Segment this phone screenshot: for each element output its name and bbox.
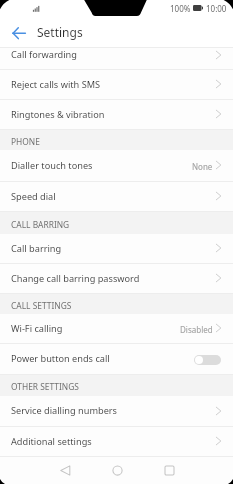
button[interactable]: Ringtones & vibration <box>0 100 233 130</box>
button[interactable]: Speed dial <box>0 182 233 212</box>
staticText: Ringtones & vibration <box>11 108 105 121</box>
button[interactable]: Wi-Fi calling <box>0 314 233 344</box>
staticText: Wi-Fi calling <box>11 322 63 335</box>
staticText: Change call barring password <box>11 272 140 285</box>
staticText: CALL BARRING <box>11 219 70 230</box>
staticText: Call barring <box>11 242 62 255</box>
staticText: Additional settings <box>11 435 92 448</box>
staticText: Power button ends call <box>11 352 110 365</box>
staticText: Reject calls with SMS <box>11 78 101 91</box>
staticText: Speed dial <box>11 190 56 203</box>
staticText: Service dialling numbers <box>11 404 118 417</box>
staticText: PHONE <box>11 136 40 147</box>
button[interactable]: Back <box>46 457 84 484</box>
staticText: Call forwarding <box>11 48 77 61</box>
button[interactable]: Service dialling numbers <box>0 396 233 427</box>
button[interactable]: Call forwarding <box>0 47 233 70</box>
button[interactable]: Change call barring password <box>0 264 233 294</box>
button[interactable]: Recent apps <box>150 457 188 484</box>
staticText: 100% <box>170 3 191 14</box>
staticText: Settings <box>37 24 83 40</box>
staticText: None <box>192 161 213 172</box>
staticText: OTHER SETTINGS <box>11 381 79 392</box>
button[interactable]: Home <box>98 457 136 484</box>
button[interactable]: Dialler touch tones <box>0 150 233 182</box>
button[interactable]: Reject calls with SMS <box>0 70 233 100</box>
button[interactable]: Power button ends call <box>0 344 233 375</box>
staticText: 10:00 <box>206 3 227 14</box>
staticText: CALL SETTINGS <box>11 300 72 311</box>
staticText: Dialler touch tones <box>11 159 93 172</box>
button[interactable]: Additional settings <box>0 427 233 457</box>
button[interactable]: Back <box>0 16 37 47</box>
button[interactable]: Call barring <box>0 234 233 264</box>
staticText: Disabled <box>180 324 213 335</box>
